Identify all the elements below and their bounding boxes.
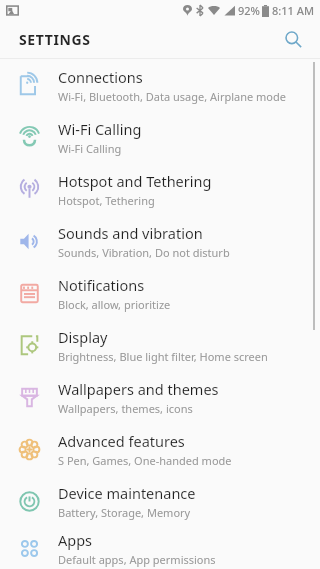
button[interactable]: Connections <box>0 59 320 111</box>
staticText: Battery, Storage, Memory <box>58 505 191 520</box>
staticText: Default apps, App permissions <box>58 552 216 567</box>
staticText: Hotspot, Tethering <box>58 193 155 208</box>
staticText: Wallpapers and themes <box>58 379 219 399</box>
staticText: Notifications <box>58 275 145 295</box>
staticText: Brightness, Blue light filter, Home scre… <box>58 349 268 364</box>
staticText: Block, allow, prioritize <box>58 297 171 312</box>
button[interactable]: Wallpapers and themes <box>0 371 320 423</box>
staticText: Wi-Fi, Bluetooth, Data usage, Airplane m… <box>58 89 286 104</box>
staticText: Hotspot and Tethering <box>58 171 212 191</box>
staticText: SETTINGS <box>19 30 91 49</box>
staticText: S Pen, Games, One-handed mode <box>58 453 232 468</box>
staticText: 92% <box>238 3 260 18</box>
button[interactable]: Display <box>0 319 320 371</box>
staticText: Apps <box>58 530 93 550</box>
staticText: Display <box>58 327 108 347</box>
staticText: Device maintenance <box>58 483 196 503</box>
button[interactable]: Sounds and vibration <box>0 215 320 267</box>
button[interactable]: Hotspot and Tethering <box>0 163 320 215</box>
staticText: 8:11 AM <box>272 3 315 18</box>
button[interactable]: Device maintenance <box>0 475 320 527</box>
staticText: Sounds, Vibration, Do not disturb <box>58 245 230 260</box>
button[interactable]: Notifications <box>0 267 320 319</box>
staticText: Connections <box>58 67 143 87</box>
staticText: Advanced features <box>58 431 185 451</box>
staticText: Wi-Fi Calling <box>58 119 142 139</box>
staticText: Wallpapers, themes, icons <box>58 401 193 416</box>
button[interactable]: Apps <box>0 527 320 569</box>
button[interactable]: Wi-Fi Calling <box>0 111 320 163</box>
button[interactable]: Advanced features <box>0 423 320 475</box>
staticText: Sounds and vibration <box>58 223 203 243</box>
button[interactable]: Search <box>278 24 308 54</box>
staticText: Wi-Fi Calling <box>58 141 122 156</box>
